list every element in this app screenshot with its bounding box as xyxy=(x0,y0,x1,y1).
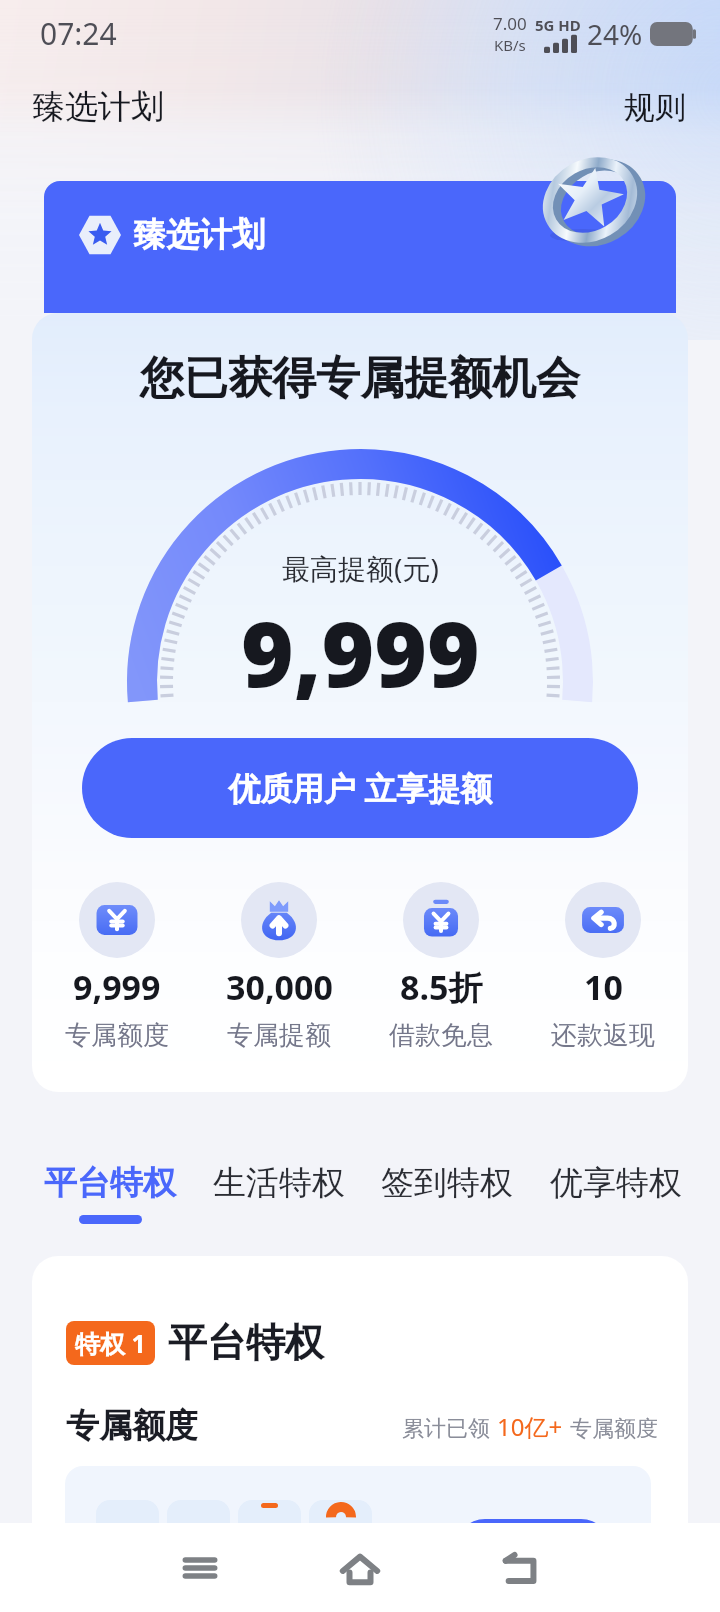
staticText: 专属额度 xyxy=(66,1405,198,1447)
staticText: 规则 xyxy=(624,88,686,127)
staticText: 特权 1 xyxy=(75,1326,146,1360)
button[interactable]: 9,999 xyxy=(36,882,198,1052)
staticText: 优质用户 立享提额 xyxy=(228,766,493,810)
staticText: 平台特权 xyxy=(168,1318,324,1367)
button[interactable]: 规则 xyxy=(590,78,720,137)
staticText: 臻选计划 xyxy=(32,86,164,128)
staticText: 借款免息 xyxy=(389,1019,493,1052)
staticText: 优享特权 xyxy=(550,1162,682,1204)
staticText: 9,999 xyxy=(241,591,480,714)
staticText: 平台特权 xyxy=(44,1162,176,1204)
staticText: 专属提额 xyxy=(227,1019,331,1052)
button[interactable]: 平台特权 xyxy=(36,1162,184,1224)
button[interactable] xyxy=(455,1519,611,1579)
staticText: 签到特权 xyxy=(381,1162,513,1204)
staticText: 您已获得专属提额机会 xyxy=(140,351,580,406)
button[interactable]: 8.5折 xyxy=(360,882,522,1052)
staticText: 10 xyxy=(584,964,623,1010)
button[interactable]: 生活特权 xyxy=(205,1162,353,1224)
button[interactable]: 优质用户 立享提额 xyxy=(82,738,638,838)
staticText: 30,000 xyxy=(226,964,333,1010)
staticText: 专属额度 xyxy=(570,1415,658,1443)
staticText: 7.00 xyxy=(493,12,527,35)
button[interactable]: 签到特权 xyxy=(373,1162,521,1224)
button[interactable]: 优享特权 xyxy=(542,1162,690,1224)
staticText: 10亿+ xyxy=(497,1410,563,1443)
staticText: 24% xyxy=(587,15,643,53)
button[interactable]: Home xyxy=(324,1532,396,1604)
staticText: 生活特权 xyxy=(213,1162,345,1204)
button[interactable]: Back xyxy=(484,1532,556,1604)
button[interactable]: 30,000 xyxy=(198,882,360,1052)
staticText: 累计已领 xyxy=(402,1415,490,1443)
button[interactable]: Menu xyxy=(164,1532,236,1604)
staticText: 8.5折 xyxy=(400,964,483,1010)
staticText: 臻选计划 xyxy=(133,214,265,256)
staticText: 专属额度 xyxy=(65,1019,169,1052)
staticText: 07:24 xyxy=(40,13,117,54)
button[interactable]: 10 xyxy=(522,882,684,1052)
staticText: 9,999 xyxy=(73,964,161,1010)
staticText: 还款返现 xyxy=(551,1019,655,1052)
button[interactable]: 臻选计划 xyxy=(44,181,676,313)
staticText: 5G HD xyxy=(535,15,581,35)
staticText: 最高提额(元) xyxy=(282,549,439,587)
staticText: KB/s xyxy=(494,35,526,55)
